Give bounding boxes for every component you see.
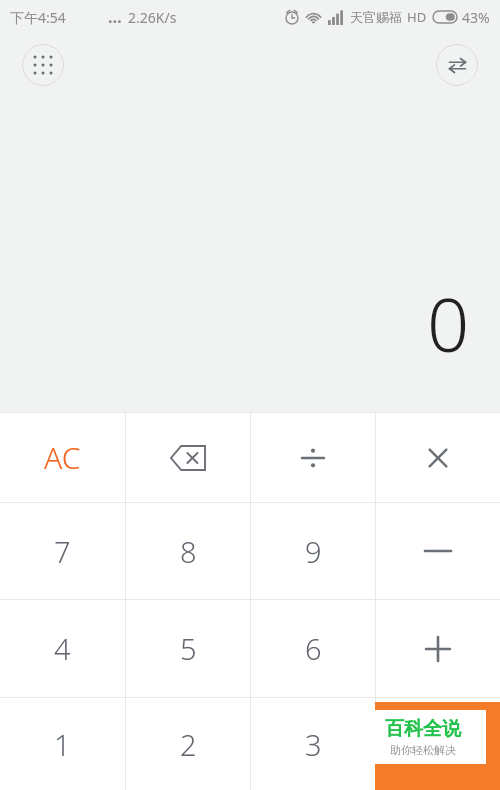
button[interactable]: 2	[126, 698, 250, 790]
button[interactable]: Multiply	[376, 413, 500, 502]
button[interactable]: Backspace	[126, 413, 250, 502]
button[interactable]: 7	[0, 503, 125, 599]
staticText: HD	[407, 8, 427, 26]
button[interactable]: Unit converter	[436, 44, 478, 86]
staticText: 8	[180, 532, 197, 571]
staticText: 下午4:54	[10, 8, 66, 27]
staticText: 0	[427, 273, 470, 374]
button[interactable]: Minus	[376, 503, 500, 599]
staticText: 助你轻松解决	[390, 743, 456, 757]
staticText: 2	[180, 725, 197, 764]
button[interactable]: 6	[251, 600, 375, 697]
button[interactable]: 4	[0, 600, 125, 697]
staticText: …	[108, 6, 122, 28]
staticText: 43%	[462, 8, 490, 27]
button[interactable]: AC	[0, 413, 125, 502]
staticText: 4	[54, 629, 71, 668]
staticText: 3	[305, 725, 322, 764]
button[interactable]: Plus	[376, 600, 500, 697]
button[interactable]: 8	[126, 503, 250, 599]
button[interactable]: 5	[126, 600, 250, 697]
staticText: 7	[54, 532, 71, 571]
button[interactable]: 9	[251, 503, 375, 599]
staticText: 6	[305, 629, 322, 668]
button[interactable]: 1	[0, 698, 125, 790]
button[interactable]	[376, 698, 500, 790]
staticText: 百科全说	[385, 717, 461, 741]
staticText: 9	[305, 532, 322, 571]
staticText: 5	[180, 629, 197, 668]
staticText: 1	[54, 725, 71, 764]
button[interactable]: Divide	[251, 413, 375, 502]
button[interactable]: More functions	[22, 44, 64, 86]
staticText: AC	[44, 437, 81, 478]
button[interactable]: 3	[251, 698, 375, 790]
staticText: 天官赐福	[350, 9, 402, 25]
staticText: 2.26K/s	[128, 8, 177, 27]
